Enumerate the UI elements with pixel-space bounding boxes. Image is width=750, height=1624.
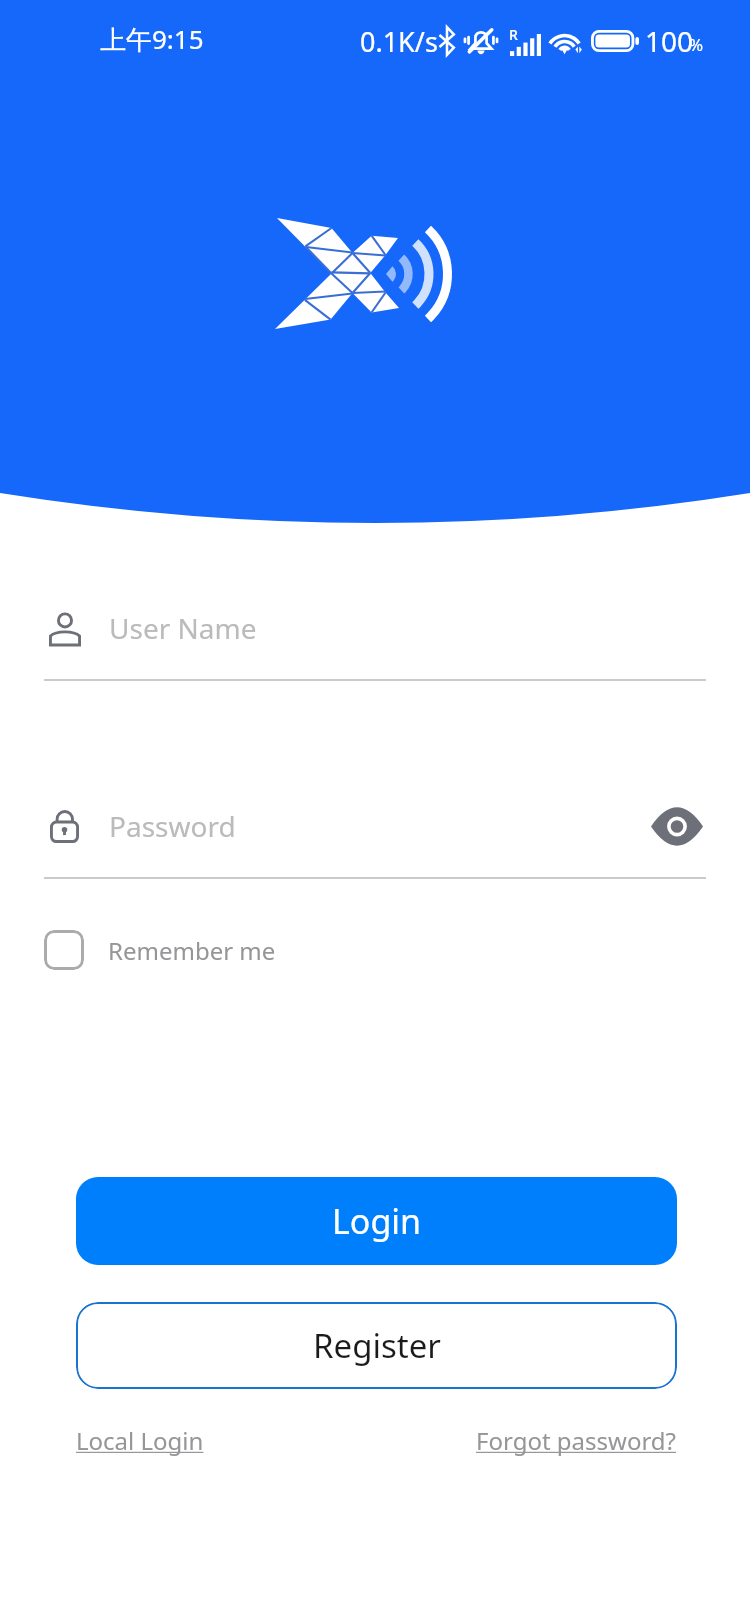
staticText: Local Login bbox=[76, 1424, 204, 1457]
button[interactable]: Remember me bbox=[44, 925, 276, 975]
staticText: Register bbox=[313, 1323, 441, 1368]
staticText: Forgot password? bbox=[476, 1424, 677, 1457]
staticText: % bbox=[689, 33, 704, 56]
staticText: 上午9:15 bbox=[100, 21, 204, 57]
staticText: 0.1K/s bbox=[360, 23, 438, 60]
button[interactable]: User Name bbox=[49, 596, 706, 660]
staticText: Login bbox=[332, 1198, 422, 1244]
button[interactable]: Local Login bbox=[76, 1424, 204, 1457]
staticText: Password bbox=[109, 807, 236, 845]
button[interactable]: Forgot password? bbox=[476, 1424, 677, 1457]
staticText: User Name bbox=[109, 609, 257, 647]
button[interactable]: Show password bbox=[645, 802, 709, 850]
button[interactable]: Login bbox=[76, 1177, 677, 1265]
staticText: Remember me bbox=[108, 934, 276, 967]
button[interactable]: Register bbox=[76, 1302, 677, 1389]
staticText: 100 bbox=[645, 22, 694, 60]
staticText: R bbox=[509, 25, 518, 44]
